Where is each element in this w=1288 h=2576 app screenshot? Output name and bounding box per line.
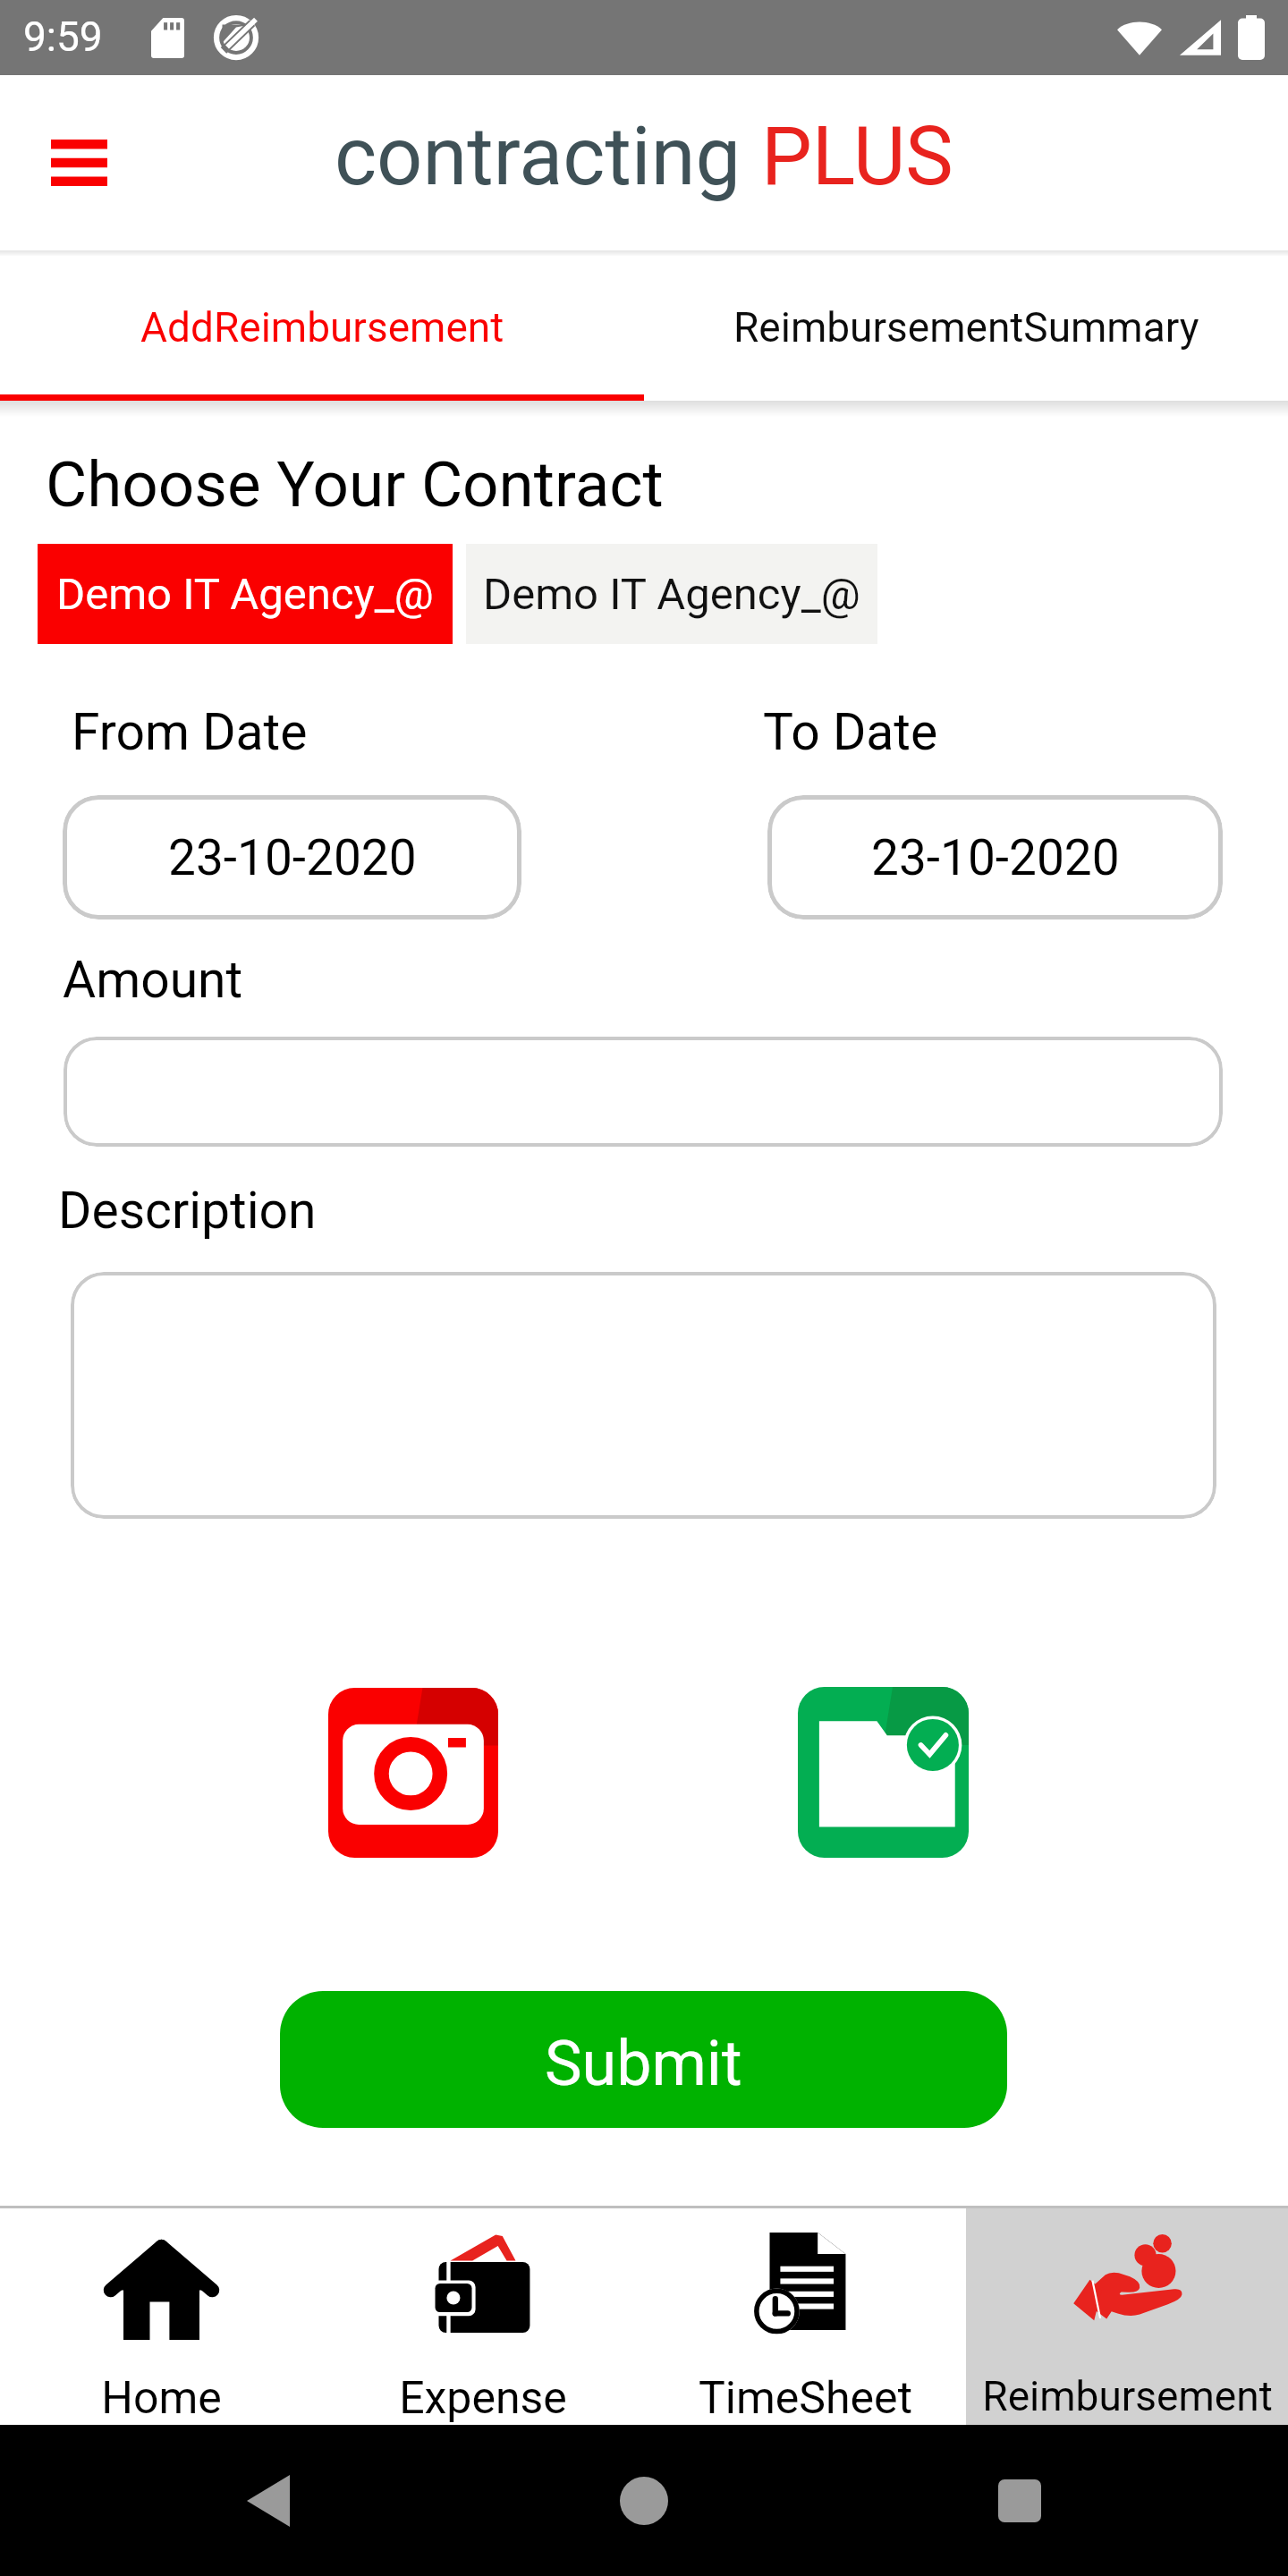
staticText: PLUS	[761, 110, 953, 204]
button[interactable]: Open navigation menu	[26, 110, 131, 216]
staticText: Demo IT Agency_@	[56, 569, 434, 620]
button[interactable]: 23-10-2020	[767, 795, 1223, 919]
staticText: 9:59	[23, 13, 103, 61]
button[interactable]: Expense	[322, 2208, 644, 2425]
button[interactable]	[71, 1272, 1216, 1519]
staticText: Choose Your Contract	[46, 447, 664, 521]
staticText: Amount	[63, 950, 243, 1010]
button[interactable]: TimeSheet	[644, 2208, 966, 2425]
staticText: Expense	[399, 2372, 567, 2425]
staticText: Home	[101, 2372, 222, 2425]
staticText: 23-10-2020	[871, 829, 1120, 886]
button[interactable]: Submit	[280, 1991, 1007, 2128]
staticText: TimeSheet	[699, 2372, 912, 2425]
staticText: Demo IT Agency_@	[483, 569, 860, 620]
button[interactable]: AddReimbursement	[0, 256, 644, 394]
button[interactable]: Take photo	[328, 1688, 498, 1858]
staticText: To Date	[763, 702, 938, 762]
button[interactable]: Attach file	[798, 1687, 969, 1858]
staticText: Description	[58, 1181, 317, 1241]
button[interactable]: Demo IT Agency_@	[38, 544, 453, 644]
staticText: From Date	[72, 702, 308, 762]
staticText: contracting	[335, 110, 761, 204]
staticText: AddReimbursement	[140, 303, 504, 352]
button[interactable]: Recent apps	[970, 2452, 1069, 2550]
button[interactable]: 23-10-2020	[63, 795, 521, 919]
staticText: ReimbursementSummary	[733, 303, 1199, 352]
staticText: Submit	[545, 2027, 742, 2100]
button[interactable]: Home	[595, 2452, 693, 2550]
staticText: Reimbursement	[982, 2372, 1273, 2420]
staticText: 23-10-2020	[168, 829, 417, 886]
button[interactable]: Reimbursement	[966, 2208, 1288, 2425]
button[interactable]: Back	[219, 2452, 318, 2550]
button[interactable]: Home	[0, 2208, 322, 2425]
button[interactable]: ReimbursementSummary	[644, 256, 1288, 394]
button[interactable]	[64, 1037, 1223, 1147]
button[interactable]: Demo IT Agency_@	[466, 544, 877, 644]
